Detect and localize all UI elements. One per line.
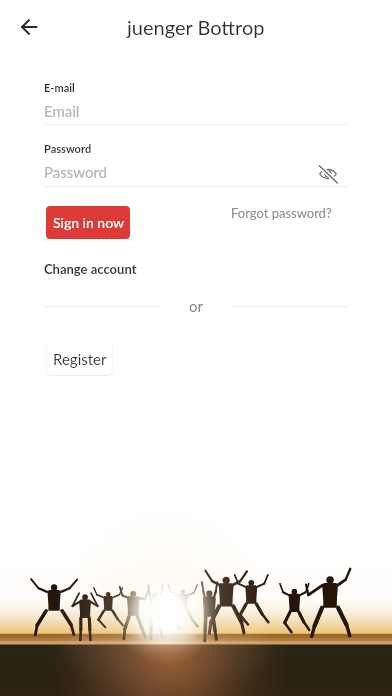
staticText: Register: [53, 350, 107, 368]
button[interactable]: Change account: [44, 261, 137, 277]
staticText: Sign in now: [53, 214, 124, 231]
staticText: Forgot password?: [231, 205, 332, 221]
staticText: Email: [44, 102, 80, 120]
staticText: E-mail: [44, 81, 75, 94]
staticText: Password: [44, 142, 92, 155]
button[interactable]: Back: [13, 11, 45, 43]
button[interactable]: Forgot password?: [231, 205, 332, 221]
button[interactable]: Register: [47, 342, 112, 375]
staticText: juenger Bottrop: [127, 15, 265, 39]
staticText: Change account: [44, 261, 137, 277]
button[interactable]: Show password: [314, 160, 342, 188]
staticText: Password: [44, 163, 107, 181]
button[interactable]: Sign in now: [46, 206, 130, 239]
staticText: or: [189, 297, 203, 315]
